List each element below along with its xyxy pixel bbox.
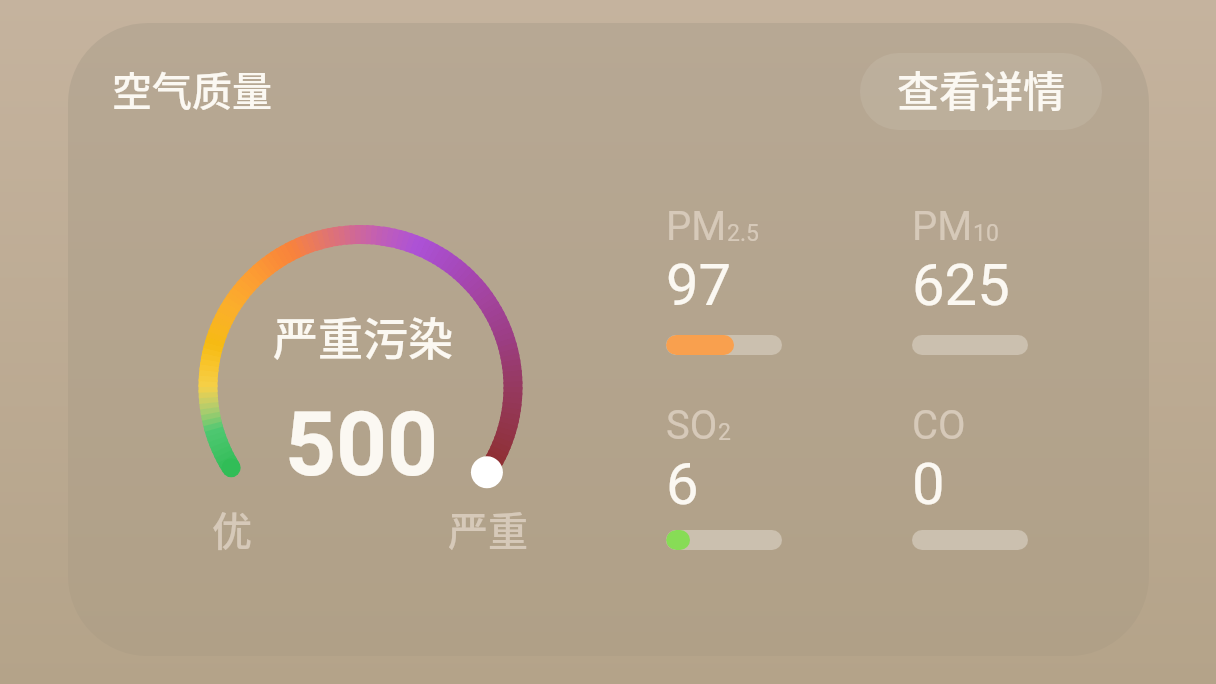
staticText: 2.5: [727, 220, 759, 247]
button[interactable]: PM10 625: [912, 203, 1062, 383]
staticText: 空气质量: [112, 60, 272, 118]
button[interactable]: SO2 6: [666, 402, 816, 582]
staticText: 严重污染: [273, 304, 454, 369]
staticText: 严重: [448, 500, 528, 558]
staticText: CO: [912, 402, 966, 449]
staticText: 查看详情: [897, 58, 1066, 119]
staticText: SO: [666, 402, 718, 449]
staticText: 2: [718, 419, 731, 446]
staticText: PM: [666, 203, 727, 250]
staticText: 10: [973, 220, 999, 247]
staticText: PM: [912, 203, 973, 250]
button[interactable]: PM2.5 97: [666, 203, 816, 383]
staticText: 6: [666, 450, 699, 518]
staticText: 97: [666, 251, 732, 319]
button[interactable]: 查看详情: [860, 53, 1102, 130]
staticText: 625: [912, 251, 1010, 319]
staticText: 500: [285, 392, 439, 496]
staticText: 优: [212, 500, 252, 558]
staticText: 0: [912, 450, 945, 518]
button[interactable]: CO 0: [912, 402, 1062, 582]
